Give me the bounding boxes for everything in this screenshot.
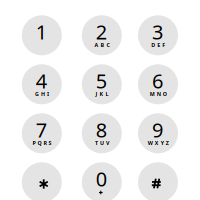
- staticText: 6: [152, 67, 163, 94]
- button[interactable]: 4: [22, 64, 62, 104]
- staticText: T U V: [95, 139, 109, 146]
- button[interactable]: 5: [82, 64, 122, 104]
- button[interactable]: 3: [138, 15, 178, 55]
- button[interactable]: 0: [82, 162, 122, 200]
- staticText: D E F: [151, 41, 165, 48]
- staticText: 9: [152, 116, 163, 143]
- staticText: J K L: [96, 90, 109, 97]
- staticText: M N O: [150, 90, 167, 97]
- staticText: 3: [152, 18, 163, 45]
- staticText: W X Y Z: [148, 139, 169, 146]
- staticText: 0: [96, 165, 107, 192]
- staticText: P Q R S: [33, 139, 52, 146]
- button[interactable]: 7: [22, 113, 62, 153]
- staticText: 4: [36, 67, 47, 94]
- button[interactable]: 1: [22, 15, 62, 55]
- staticText: 5: [96, 67, 107, 94]
- staticText: A B C: [95, 41, 110, 48]
- staticText: 1: [36, 18, 47, 45]
- button[interactable]: 2: [82, 15, 122, 55]
- staticText: 7: [36, 116, 47, 143]
- button[interactable]: 6: [138, 64, 178, 104]
- button[interactable]: 8: [82, 113, 122, 153]
- staticText: G H I: [35, 90, 49, 97]
- button[interactable]: [138, 162, 178, 200]
- staticText: 2: [96, 18, 107, 45]
- button[interactable]: [22, 162, 62, 200]
- button[interactable]: 9: [138, 113, 178, 153]
- staticText: 8: [96, 116, 107, 143]
